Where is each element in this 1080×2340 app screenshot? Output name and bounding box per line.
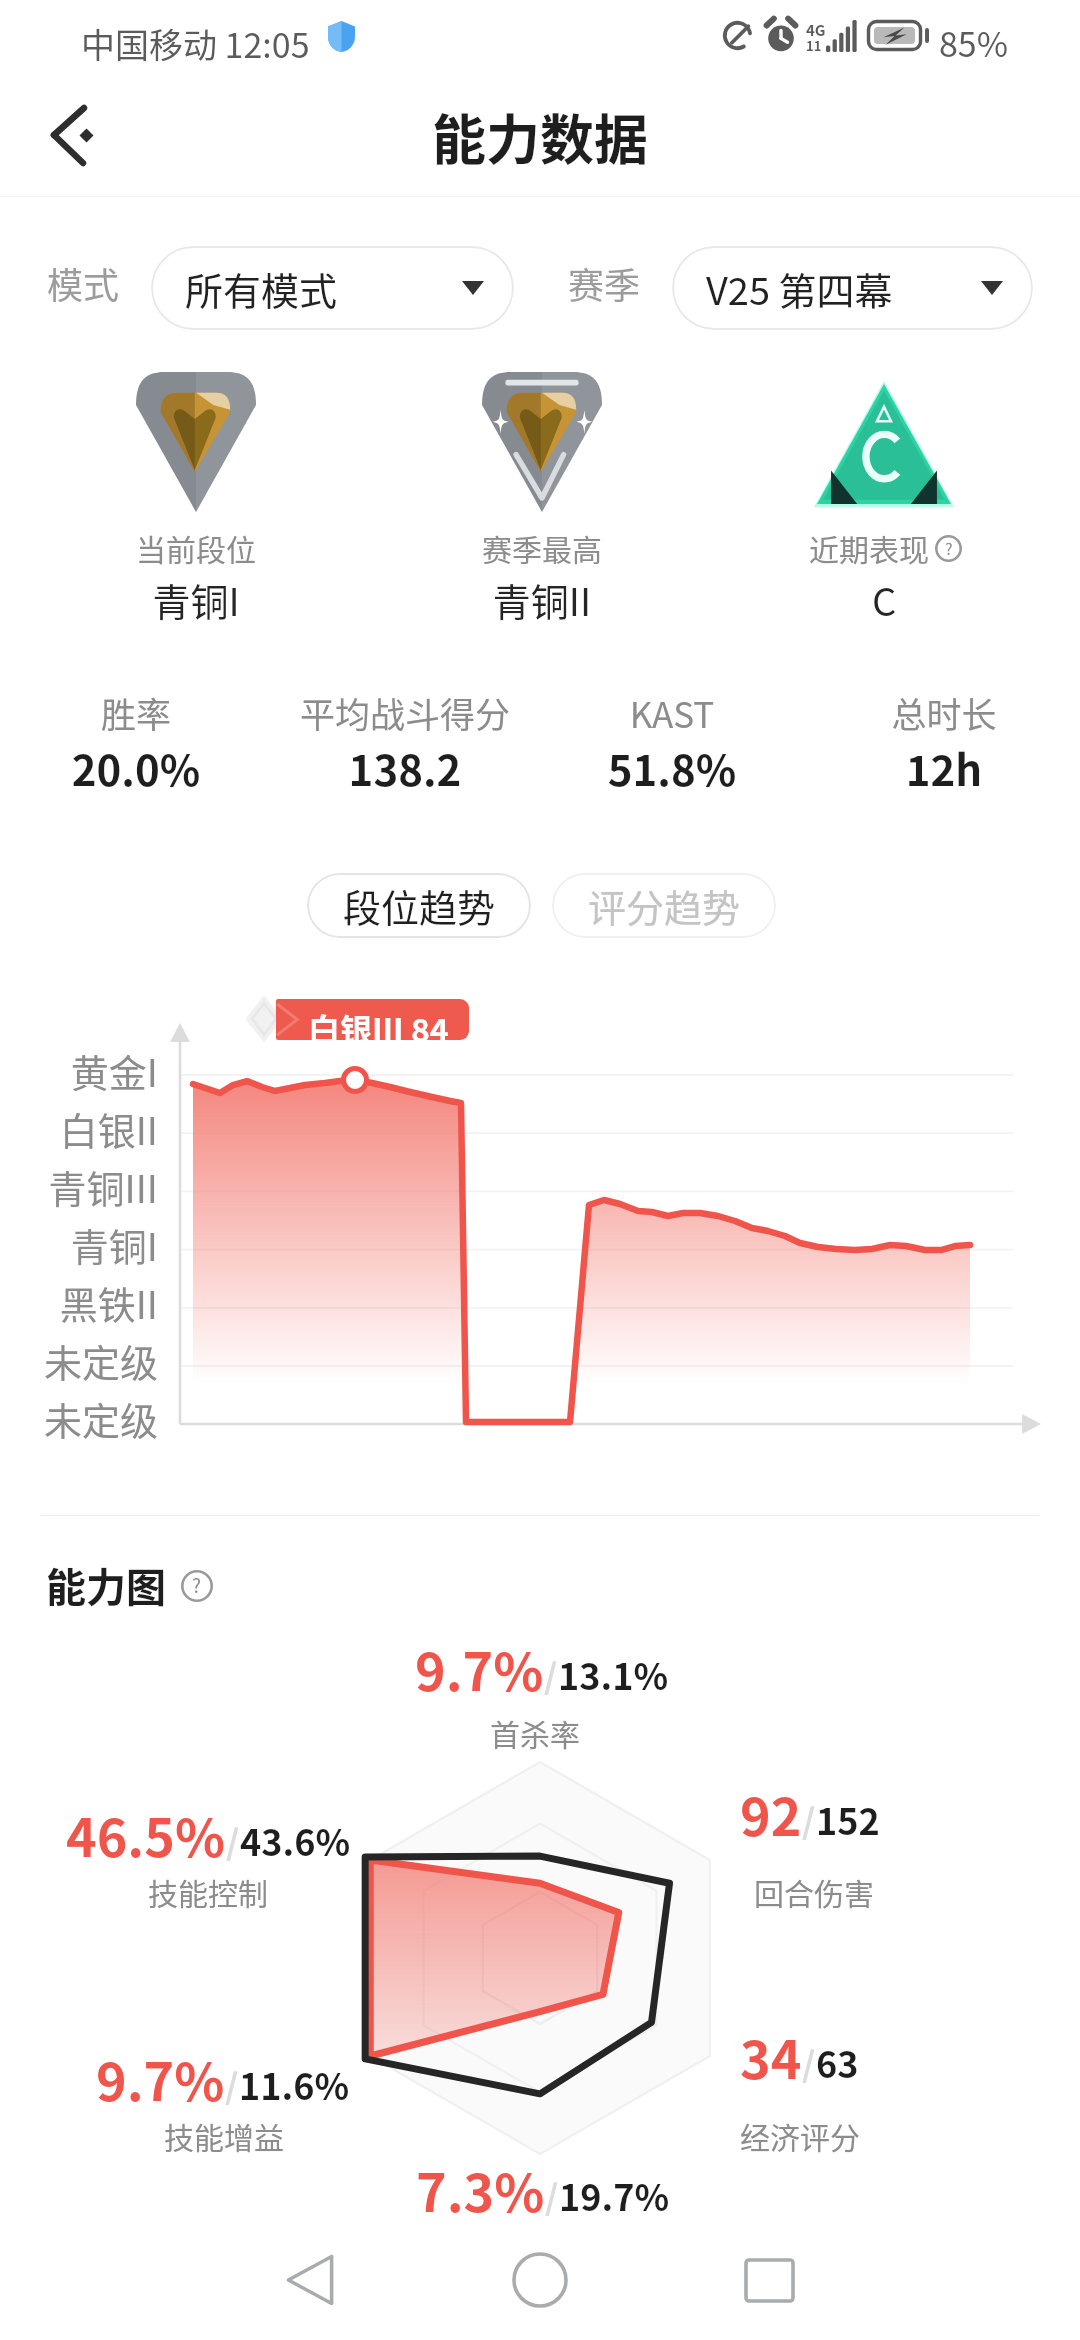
staticText: 138.2 [270,737,540,798]
staticText: 34 [740,2019,802,2094]
staticText: / [225,2060,239,2109]
button[interactable]: 评分趋势 [552,873,776,938]
staticText: 段位趋势 [343,878,496,933]
staticText: 11.6% [239,2058,350,2110]
staticText: 92 [740,1776,802,1851]
staticText: 51.8% [572,737,772,798]
staticText: 总时长 [844,687,1044,738]
staticText: 13.1% [558,1648,669,1700]
staticText: 中国移动 12:05 [81,19,310,68]
staticText: 未定级 [0,1333,158,1388]
staticText: 回合伤害 [754,1870,874,1913]
staticText: V25 第四幕 [706,261,893,316]
staticText: 4G [806,19,826,41]
staticText: / [544,1650,558,1699]
staticText: 能力数据 [0,97,1080,175]
button[interactable]: Back [20,92,110,176]
staticText: 赛季 [568,257,641,309]
staticText: / [802,1795,816,1844]
button[interactable]: V25 第四幕 [672,246,1033,330]
staticText: 模式 [47,257,120,309]
staticText: ? [192,1571,202,1599]
staticText: C [759,572,1009,627]
staticText: 152 [816,1793,880,1845]
button[interactable]: Recents [714,2225,824,2335]
staticText: 当前段位 [71,526,321,569]
staticText: 85% [939,18,1009,67]
staticText: 技能增益 [164,2114,284,2157]
staticText: 白银II [0,1101,158,1156]
staticText: KAST [572,687,772,738]
staticText: 20.0% [36,737,236,798]
staticText: 黄金I [0,1043,158,1098]
staticText: 63 [816,2036,859,2088]
staticText: 所有模式 [185,261,338,316]
staticText: ? [945,536,953,559]
staticText: 12h [844,737,1044,798]
staticText: 9.7% [96,2041,225,2116]
staticText: 评分趋势 [588,878,741,933]
staticText: 能力图 [46,1556,166,1614]
staticText: 平均战斗得分 [270,687,540,738]
staticText: 7.3% [416,2152,545,2227]
staticText: 19.7% [559,2169,670,2221]
staticText: 46.5% [66,1797,226,1872]
staticText: 胜率 [36,687,236,738]
staticText: 赛季最高 [417,526,667,569]
button[interactable]: Home [485,2225,595,2335]
staticText: / [802,2038,816,2087]
staticText: 青铜I [71,572,321,627]
button[interactable]: 段位趋势 [307,873,531,938]
staticText: / [545,2171,559,2220]
staticText: 青铜II [417,572,667,627]
button[interactable]: 所有模式 [151,246,514,330]
staticText: 白银III 84 [308,1005,449,1040]
staticText: 43.6% [240,1814,351,1866]
staticText: 首杀率 [490,1711,580,1754]
staticText: 黑铁II [0,1275,158,1330]
staticText: 11 [806,36,822,55]
staticText: 近期表现 [809,526,929,569]
staticText: 经济评分 [740,2114,860,2157]
staticText: 9.7% [415,1631,544,1706]
staticText: / [226,1816,240,1865]
button[interactable]: Back [255,2225,365,2335]
staticText: 青铜III [0,1159,158,1214]
staticText: 未定级 [0,1391,158,1446]
staticText: 技能控制 [148,1870,268,1913]
staticText: 青铜I [0,1217,158,1272]
